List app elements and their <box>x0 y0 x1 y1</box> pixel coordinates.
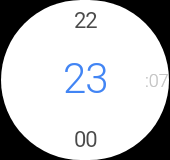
staticText: 00 <box>74 127 97 153</box>
staticText: 23 <box>63 54 108 103</box>
button[interactable]: :07 <box>145 70 169 91</box>
button[interactable]: 23 <box>63 54 108 103</box>
button[interactable]: 22 <box>74 8 97 34</box>
staticText: 22 <box>74 8 97 34</box>
staticText: :07 <box>145 70 169 91</box>
button[interactable]: 00 <box>74 127 97 153</box>
